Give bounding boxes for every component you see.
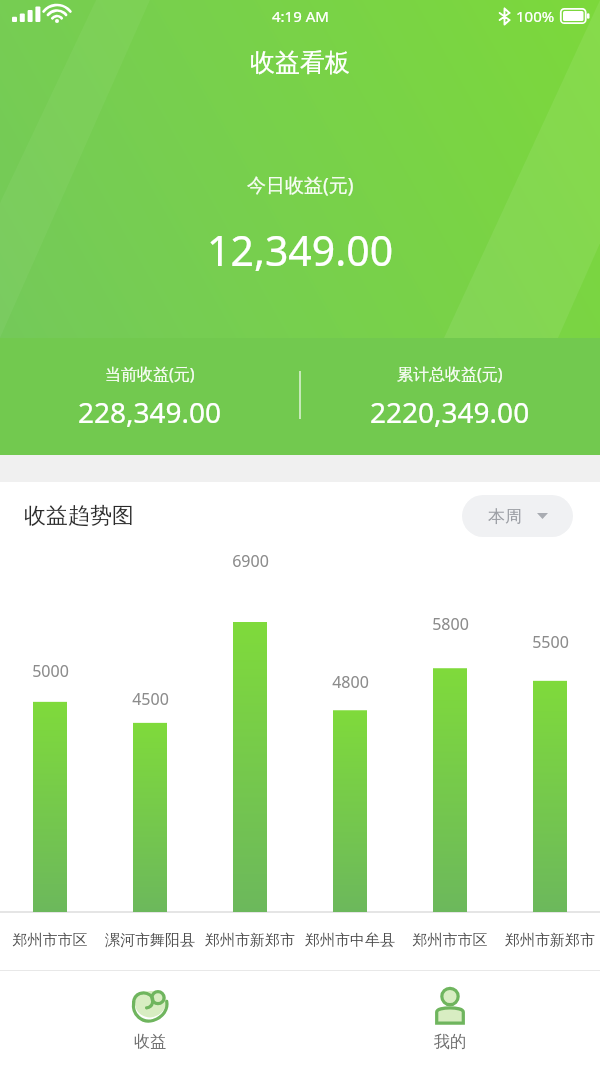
staticText: 郑州市新郑市 [200,931,300,950]
staticText: 郑州市市区 [400,931,500,950]
staticText: 郑州市中牟县 [300,931,400,950]
staticText: 4:19 AM [272,6,329,26]
staticText: 本周 [488,506,522,527]
staticText: 我的 [434,1032,466,1052]
staticText: 4800 [332,671,369,693]
staticText: 100% [516,6,555,26]
staticText: 收益 [134,1032,166,1052]
staticText: 2220,349.00 [370,393,530,431]
staticText: 5500 [532,631,569,653]
staticText: 收益趋势图 [24,502,134,530]
staticText: 4500 [132,688,169,710]
staticText: 228,349.00 [78,393,222,431]
staticText: 漯河市舞阳县 [100,931,200,950]
staticText: 累计总收益(元) [397,363,503,385]
staticText: 郑州市市区 [0,931,100,950]
staticText: 当前收益(元) [105,363,195,385]
staticText: 今日收益(元) [247,172,354,198]
staticText: 5000 [32,660,69,682]
button[interactable]: 本周 [462,495,573,537]
button[interactable]: 我的 [300,971,600,1067]
staticText: 郑州市新郑市 [500,931,600,950]
staticText: 收益看板 [250,47,350,78]
button[interactable]: 收益 [0,971,300,1067]
staticText: 5800 [432,613,469,635]
staticText: 6900 [232,550,269,572]
staticText: 12,349.00 [207,222,394,278]
